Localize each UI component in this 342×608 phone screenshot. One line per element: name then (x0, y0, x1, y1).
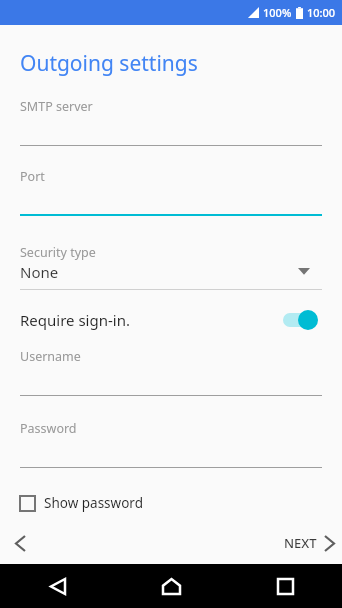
staticText: NEXT (284, 534, 317, 552)
staticText: None (20, 262, 59, 282)
button[interactable]: SMTP server (0, 95, 342, 147)
button[interactable]: Show password (0, 488, 155, 518)
button[interactable]: Password (0, 417, 342, 469)
button[interactable]: Recent apps (228, 564, 342, 608)
staticText: 10:00 (307, 5, 336, 20)
staticText: Password (20, 420, 77, 437)
staticText: Security type (20, 244, 96, 261)
button[interactable]: Port (0, 165, 342, 217)
button[interactable]: Security type (0, 240, 342, 290)
staticText: 100% (263, 5, 292, 20)
staticText: Port (20, 168, 45, 185)
staticText: SMTP server (20, 98, 93, 115)
staticText: Show password (44, 494, 143, 512)
button[interactable]: Username (0, 345, 342, 397)
button[interactable]: Require sign-in. (0, 299, 342, 341)
button[interactable]: Back (0, 564, 114, 608)
staticText: Username (20, 348, 81, 365)
staticText: Outgoing settings (20, 49, 198, 78)
button[interactable]: NEXT (272, 528, 342, 558)
staticText: Require sign-in. (20, 310, 130, 330)
button[interactable]: Home (114, 564, 228, 608)
button[interactable]: Back (0, 524, 40, 562)
